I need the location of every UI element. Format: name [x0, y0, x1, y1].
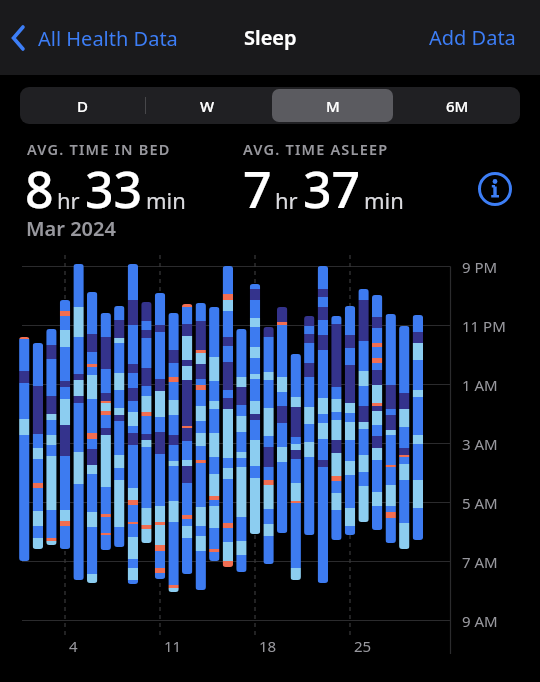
staticText: hr	[275, 185, 298, 215]
staticText: min	[364, 185, 404, 215]
button[interactable]: M	[270, 87, 395, 124]
staticText: Sleep	[244, 24, 297, 51]
staticText: 1 AM	[462, 375, 498, 395]
staticText: 37	[303, 155, 361, 223]
staticText: AVG. TIME IN BED	[27, 139, 171, 159]
staticText: min	[146, 185, 186, 215]
staticText: W	[200, 96, 215, 116]
button[interactable]: All Health Data	[11, 24, 178, 52]
staticText: M	[326, 96, 340, 116]
staticText: 8	[25, 155, 54, 223]
staticText: 11	[164, 636, 182, 656]
staticText: AVG. TIME ASLEEP	[243, 139, 389, 159]
button[interactable]: W	[145, 87, 270, 124]
staticText: 33	[85, 155, 143, 223]
staticText: 11 PM	[462, 316, 506, 336]
staticText: hr	[57, 185, 80, 215]
button[interactable]	[476, 170, 514, 208]
staticText: 4	[69, 636, 78, 656]
staticText: 25	[354, 636, 372, 656]
staticText: 5 AM	[462, 493, 498, 513]
button[interactable]: D	[20, 87, 145, 124]
staticText: 9 AM	[462, 611, 498, 631]
staticText: 3 AM	[462, 434, 498, 454]
staticText: 9 PM	[462, 257, 498, 277]
button[interactable]: Add Data	[429, 24, 516, 51]
staticText: 7	[243, 155, 272, 223]
staticText: 6M	[446, 96, 469, 116]
staticText: Mar 2024	[26, 215, 116, 242]
staticText: 7 AM	[462, 552, 498, 572]
staticText: All Health Data	[38, 25, 178, 52]
button[interactable]: 6M	[395, 87, 520, 124]
staticText: 18	[259, 636, 277, 656]
staticText: D	[77, 96, 88, 116]
